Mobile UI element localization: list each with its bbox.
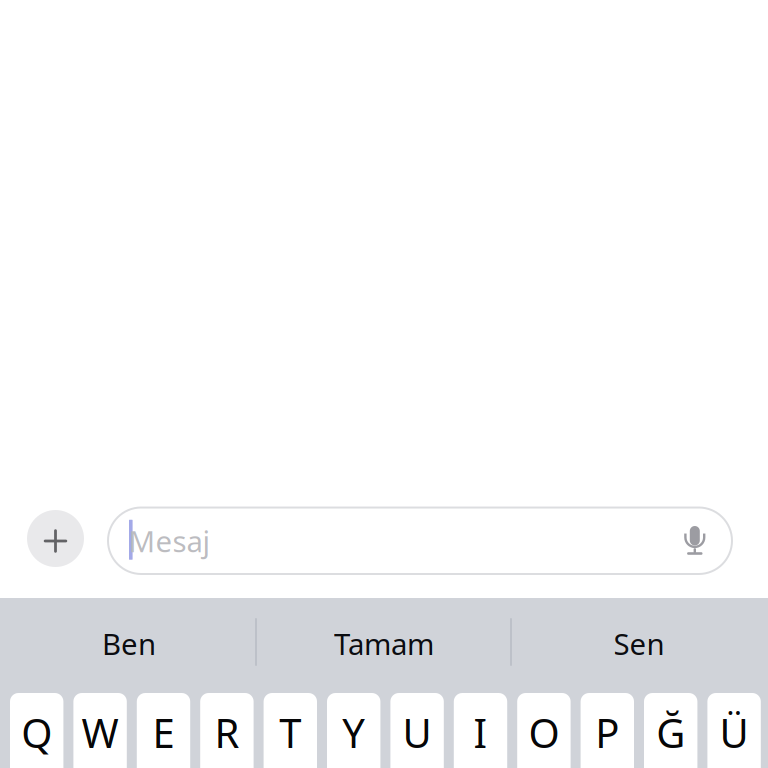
button[interactable]: Ü — [707, 693, 761, 768]
button[interactable]: P — [581, 693, 634, 768]
button[interactable]: R — [200, 693, 254, 768]
button[interactable]: Mesaj — [108, 507, 732, 574]
button[interactable]: O — [517, 693, 571, 768]
staticText: Mesaj — [129, 521, 211, 560]
staticText: Tamam — [334, 624, 434, 663]
staticText: Ü — [720, 706, 749, 759]
staticText: Ğ — [656, 706, 685, 759]
button[interactable]: Q — [10, 693, 63, 768]
button[interactable]: Dictate — [673, 518, 717, 562]
button[interactable]: Add attachment or app — [27, 510, 84, 567]
staticText: W — [82, 706, 119, 759]
staticText: P — [595, 706, 619, 759]
staticText: Sen — [613, 624, 664, 663]
staticText: Ben — [102, 624, 156, 663]
staticText: Q — [21, 706, 52, 759]
button[interactable]: Tamam — [256, 596, 511, 691]
button[interactable]: Sen — [511, 596, 766, 691]
button[interactable]: U — [390, 693, 444, 768]
button[interactable]: Ğ — [644, 693, 697, 768]
button[interactable]: T — [264, 693, 317, 768]
staticText: U — [403, 706, 432, 759]
button[interactable]: Y — [327, 693, 380, 768]
staticText: T — [279, 706, 301, 759]
button[interactable]: I — [454, 693, 507, 768]
staticText: Y — [342, 706, 365, 759]
staticText: E — [152, 706, 174, 759]
staticText: I — [473, 706, 487, 759]
button[interactable]: Ben — [1, 596, 256, 691]
staticText: O — [528, 706, 559, 759]
button[interactable]: W — [73, 693, 127, 768]
staticText: R — [214, 706, 239, 759]
button[interactable]: E — [137, 693, 190, 768]
